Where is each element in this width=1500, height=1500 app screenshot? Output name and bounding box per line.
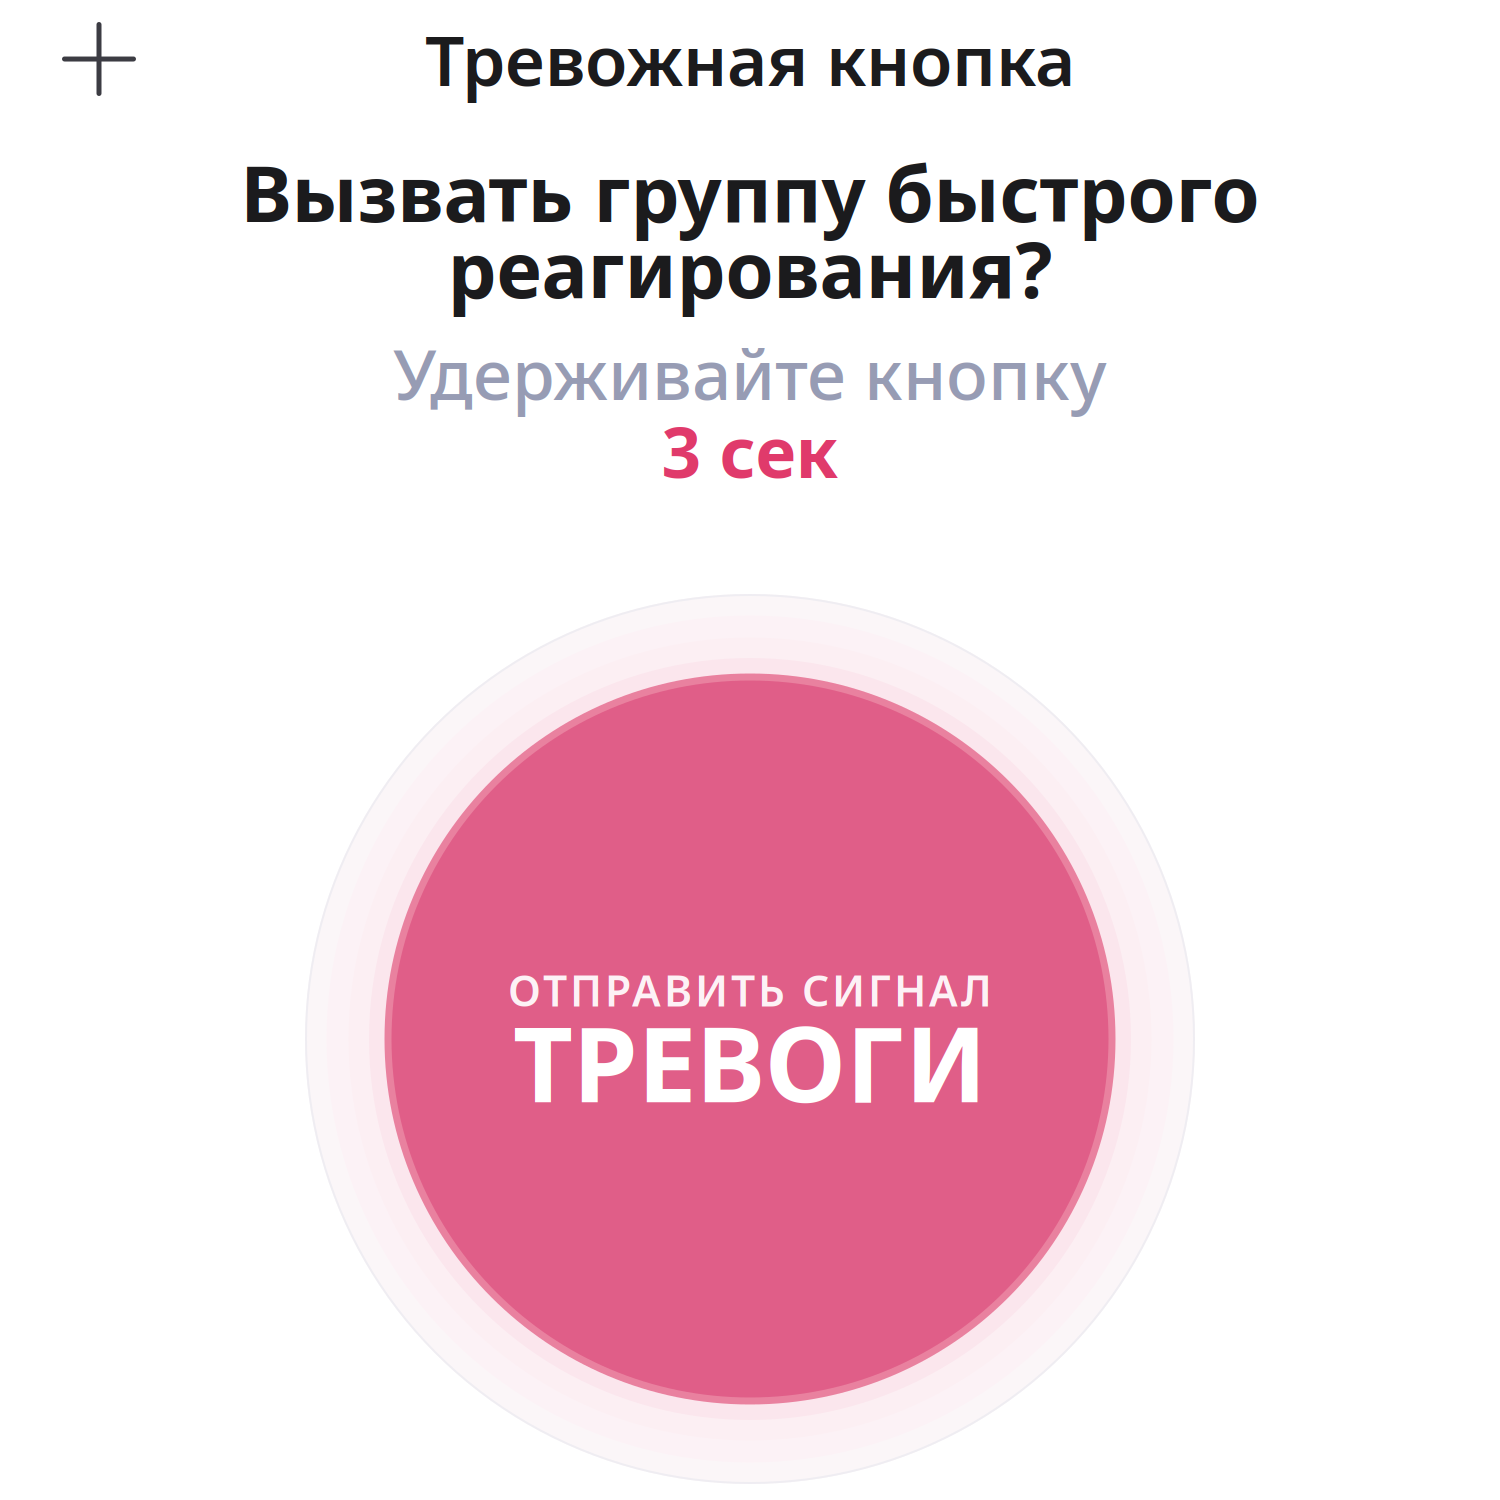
staticText: реагирования?: [447, 217, 1052, 319]
staticText: Удерживайте кнопку: [393, 327, 1107, 419]
button[interactable]: Add: [40, 0, 158, 118]
staticText: Вызвать группу быстрого: [240, 141, 1259, 243]
staticText: 3 сек: [661, 405, 838, 497]
staticText: Тревожная кнопка: [425, 13, 1075, 105]
button[interactable]: ОТПРАВИТЬ СИГНАЛ: [305, 594, 1195, 1484]
staticText: ОТПРАВИТЬ СИГНАЛ: [508, 962, 992, 1018]
staticText: ТРЕВОГИ: [513, 993, 987, 1131]
